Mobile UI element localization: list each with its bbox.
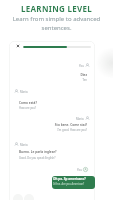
staticText: How are you? [19, 106, 36, 110]
button[interactable]: Oh po. Sp americano? [52, 176, 95, 189]
button[interactable]: Close [16, 44, 20, 48]
staticText: You [77, 168, 82, 172]
staticText: Maria [20, 90, 28, 94]
staticText: Learn from simple to advanced sentences. [0, 15, 113, 32]
staticText: Bueno. Le parla inglese? [19, 150, 57, 154]
staticText: Maria [20, 143, 28, 147]
button[interactable]: Microphone [13, 194, 23, 200]
staticText: Ten [0, 78, 87, 82]
staticText: Como está? [19, 101, 37, 105]
staticText: Good. Do you speak English? [19, 156, 56, 160]
staticText: Sto bene. Come stai? [0, 123, 87, 127]
staticText: It fine. Are you American? [53, 182, 85, 186]
staticText: I'm good. How are you? [0, 128, 87, 132]
staticText: Maria [76, 117, 84, 121]
staticText: Diez [0, 73, 87, 77]
staticText: Oh po. Sp americano? [53, 177, 86, 181]
other: Avatar [83, 167, 88, 172]
staticText: You [79, 64, 84, 68]
staticText: LEARNING LEVEL [0, 3, 113, 14]
button[interactable]: Keyboard [24, 194, 34, 200]
